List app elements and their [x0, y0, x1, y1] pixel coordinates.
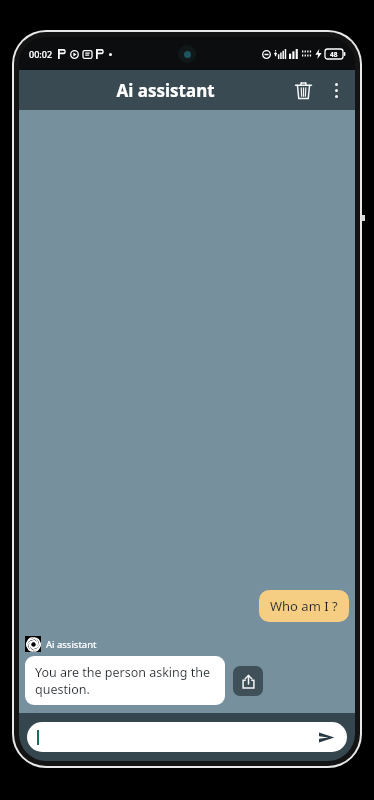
button[interactable]: Send message: [315, 726, 337, 748]
staticText: You are the person asking the question.: [35, 664, 215, 697]
staticText: Who am I ?: [270, 597, 338, 615]
staticText: Ai assistant: [116, 79, 215, 102]
staticText: 00:02: [29, 48, 53, 60]
button[interactable]: You are the person asking the question.: [25, 656, 225, 705]
staticText: Ai assistant: [46, 638, 97, 651]
button[interactable]: More options: [321, 75, 351, 105]
button[interactable]: Delete conversation: [285, 72, 321, 108]
button[interactable]: Share response: [233, 666, 263, 696]
button[interactable]: Who am I ?: [259, 590, 349, 622]
button[interactable]: Send message: [27, 722, 347, 752]
staticText: 48: [330, 50, 338, 59]
